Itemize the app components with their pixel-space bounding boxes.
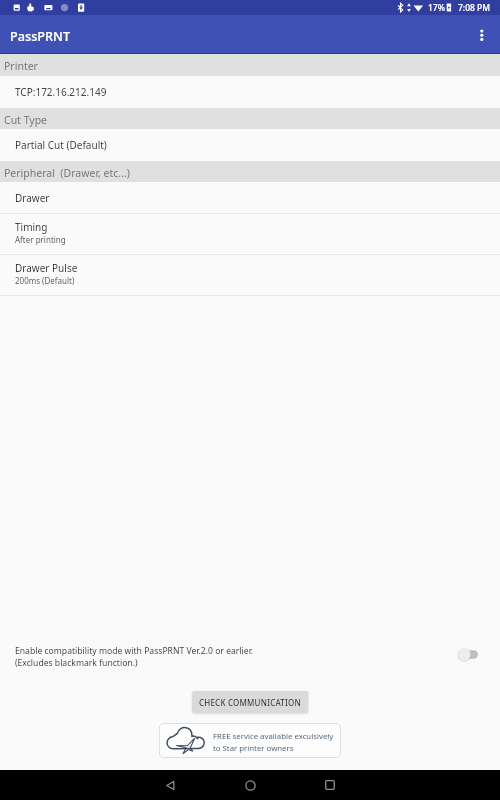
- staticText: PassPRNT: [10, 27, 71, 44]
- button[interactable]: Recents: [306, 770, 354, 800]
- staticText: FREE service available exculsively: [213, 731, 334, 742]
- button[interactable]: Home: [226, 770, 274, 800]
- button[interactable]: Back: [146, 770, 194, 800]
- staticText: Drawer: [15, 191, 50, 205]
- staticText: 7:08 PM: [458, 2, 491, 14]
- button[interactable]: More options: [464, 15, 500, 54]
- staticText: 17%: [428, 2, 445, 14]
- button[interactable]: TCP:172.16.212.149: [0, 76, 500, 108]
- staticText: Peripheral (Drawer, etc...): [4, 166, 130, 180]
- button[interactable]: Timing: [0, 214, 500, 254]
- staticText: Cut Type: [4, 113, 48, 127]
- button[interactable]: Compatibility mode toggle: [454, 642, 490, 666]
- staticText: (Excludes blackmark function.): [15, 657, 138, 669]
- staticText: TCP:172.16.212.149: [15, 85, 107, 99]
- button[interactable]: CHECK COMMUNICATION: [192, 691, 308, 713]
- button[interactable]: Drawer Pulse: [0, 255, 500, 295]
- staticText: 200ms (Default): [15, 275, 75, 286]
- staticText: Printer: [4, 59, 38, 73]
- button[interactable]: Partial Cut (Default): [0, 129, 500, 161]
- button[interactable]: FREE service available exculsively: [159, 723, 341, 758]
- staticText: Partial Cut (Default): [15, 138, 107, 152]
- staticText: Enable compatibility mode with PassPRNT …: [15, 645, 254, 657]
- staticText: Timing: [15, 220, 48, 234]
- button[interactable]: Drawer: [0, 182, 500, 213]
- staticText: After printing: [15, 234, 66, 245]
- staticText: Drawer Pulse: [15, 261, 78, 275]
- staticText: CHECK COMMUNICATION: [199, 697, 301, 708]
- staticText: to Star printer owners: [213, 743, 294, 754]
